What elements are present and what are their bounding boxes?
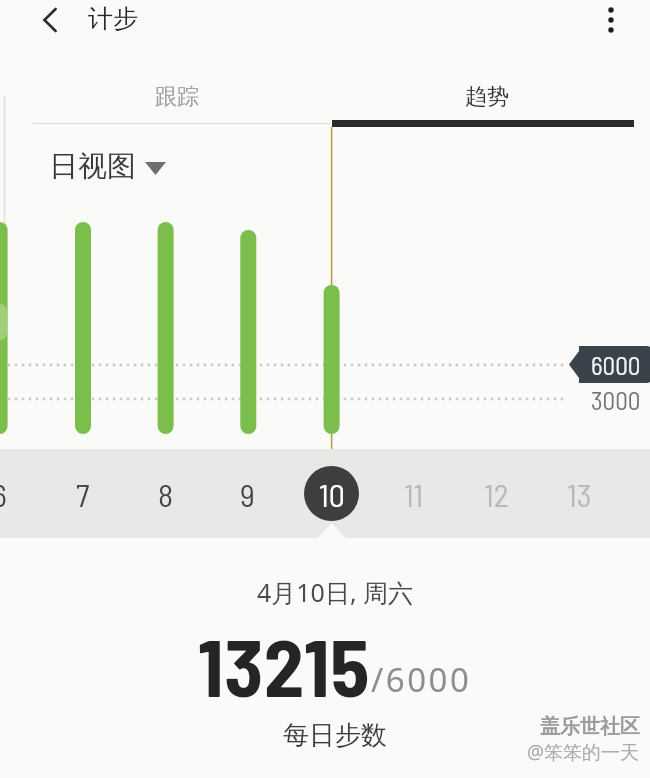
button[interactable]: 7 <box>55 466 110 521</box>
staticText: 计步 <box>88 3 138 34</box>
staticText: 7 <box>76 475 90 513</box>
staticText: 12 <box>484 475 509 513</box>
button[interactable]: 9 <box>220 466 275 521</box>
button[interactable]: 6 <box>0 466 27 521</box>
staticText: 9 <box>240 475 255 513</box>
staticText: 6 <box>0 475 7 513</box>
button[interactable]: 跟踪 <box>0 69 330 124</box>
button[interactable]: 趋势 <box>330 69 650 124</box>
staticText: 趋势 <box>465 83 509 111</box>
button[interactable]: 12 <box>469 466 524 521</box>
button[interactable] <box>591 0 631 40</box>
button[interactable]: 10 <box>304 466 359 521</box>
staticText: 13215 <box>198 617 371 713</box>
button[interactable] <box>30 0 70 40</box>
staticText: 跟踪 <box>155 83 199 111</box>
staticText: 13 <box>567 475 592 513</box>
button[interactable]: 11 <box>386 466 441 521</box>
button[interactable]: 日视图 <box>44 144 171 189</box>
staticText: 11 <box>404 475 424 513</box>
staticText: @笨笨的一天 <box>527 739 640 765</box>
button[interactable]: 13 <box>552 466 607 521</box>
staticText: 日视图 <box>49 148 136 185</box>
staticText: 3000 <box>591 385 641 415</box>
staticText: 盖乐世社区 <box>540 714 640 739</box>
staticText: 每日步数 <box>283 719 387 752</box>
staticText: 10 <box>319 475 345 513</box>
staticText: 6000 <box>591 350 641 380</box>
staticText: 8 <box>158 475 174 513</box>
button[interactable]: 8 <box>138 466 193 521</box>
staticText: /6000 <box>371 657 472 702</box>
staticText: 4月10日, 周六 <box>257 575 414 609</box>
